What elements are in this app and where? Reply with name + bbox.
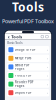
button[interactable]: Import PDF <box>7 89 49 96</box>
staticText: Powerful PDF Toolbox <box>2 18 54 25</box>
staticText: › <box>47 73 48 78</box>
staticText: › <box>47 90 48 95</box>
button[interactable]: Reorder PDF Pages <box>7 80 49 88</box>
button[interactable]: Protect PDF <box>7 72 49 79</box>
staticText: Import PDF <box>15 91 31 94</box>
button[interactable]: Extract PDF Pages <box>7 63 49 71</box>
staticText: › <box>47 47 48 52</box>
staticText: Tools <box>12 0 44 15</box>
button[interactable]: Search <box>41 35 44 38</box>
staticText: Basic Tools <box>7 41 22 45</box>
staticText: Protect PDF <box>15 74 31 77</box>
staticText: › <box>47 64 48 69</box>
staticText: › <box>47 81 48 87</box>
staticText: Reorder PDF Pages <box>15 80 33 88</box>
staticText: Tools <box>11 34 22 39</box>
button[interactable]: Merge PDFs <box>7 55 49 62</box>
staticText: Merge PDFs <box>15 56 31 60</box>
staticText: Extract PDF Pages <box>15 63 29 70</box>
staticText: ‹ <box>8 33 10 40</box>
button[interactable]: Image To PDF <box>7 46 49 53</box>
button[interactable]: Back <box>6 34 11 39</box>
staticText: Image To PDF <box>15 48 35 51</box>
button[interactable]: More <box>46 35 48 38</box>
staticText: › <box>47 56 48 61</box>
